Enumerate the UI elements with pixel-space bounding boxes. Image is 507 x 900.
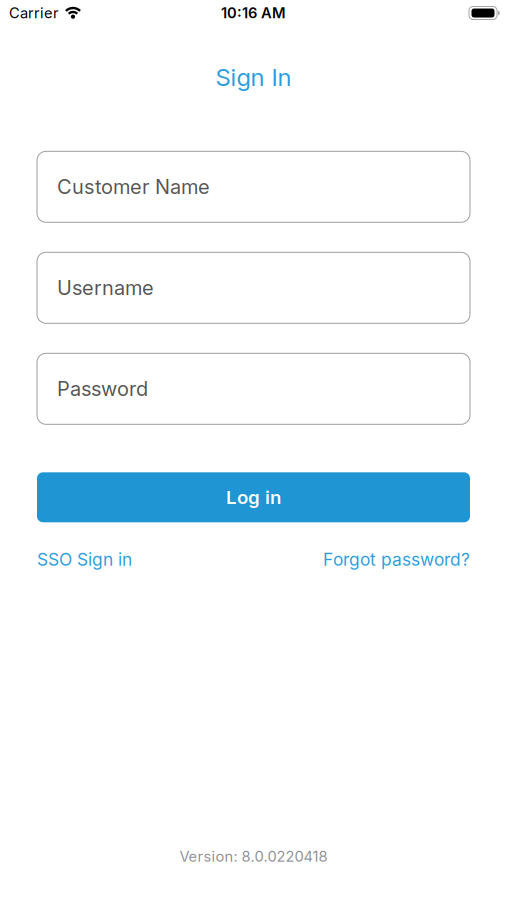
staticText: Password	[57, 377, 148, 401]
button[interactable]: Username	[37, 252, 470, 323]
staticText: Carrier	[9, 4, 59, 22]
staticText: SSO Sign in	[37, 549, 132, 570]
button[interactable]: Password	[37, 353, 470, 424]
staticText: Username	[57, 276, 154, 300]
staticText: Forgot password?	[323, 549, 470, 570]
button[interactable]: Customer Name	[37, 151, 470, 222]
staticText: Customer Name	[57, 175, 210, 199]
staticText: Log in	[226, 486, 281, 508]
button[interactable]: Forgot password?	[323, 549, 470, 570]
staticText: 10:16 AM	[221, 4, 286, 22]
staticText: Version: 8.0.0220418	[179, 848, 327, 865]
button[interactable]: Log in	[37, 472, 470, 522]
staticText: Sign In	[215, 63, 291, 91]
button[interactable]: SSO Sign in	[37, 549, 132, 570]
